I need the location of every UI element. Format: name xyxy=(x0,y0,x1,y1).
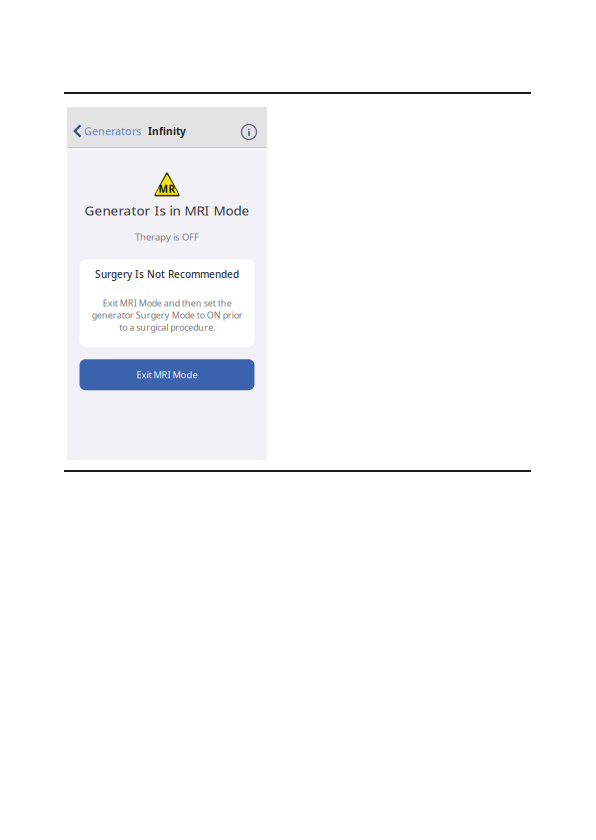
staticText: Generators xyxy=(84,124,141,138)
staticText: Therapy is OFF xyxy=(135,230,199,243)
button[interactable]: Information xyxy=(241,115,267,147)
staticText: Infinity xyxy=(148,124,186,138)
button[interactable]: Generators xyxy=(67,115,147,147)
button[interactable]: Exit MRI Mode xyxy=(79,359,254,390)
staticText: Generator Is in MRI Mode xyxy=(84,201,249,219)
staticText: Surgery Is Not Recommended xyxy=(95,267,239,281)
staticText: MR xyxy=(158,182,175,196)
staticText: Exit MRI Mode and then set the generator… xyxy=(91,297,242,333)
staticText: Exit MRI Mode xyxy=(136,368,197,381)
